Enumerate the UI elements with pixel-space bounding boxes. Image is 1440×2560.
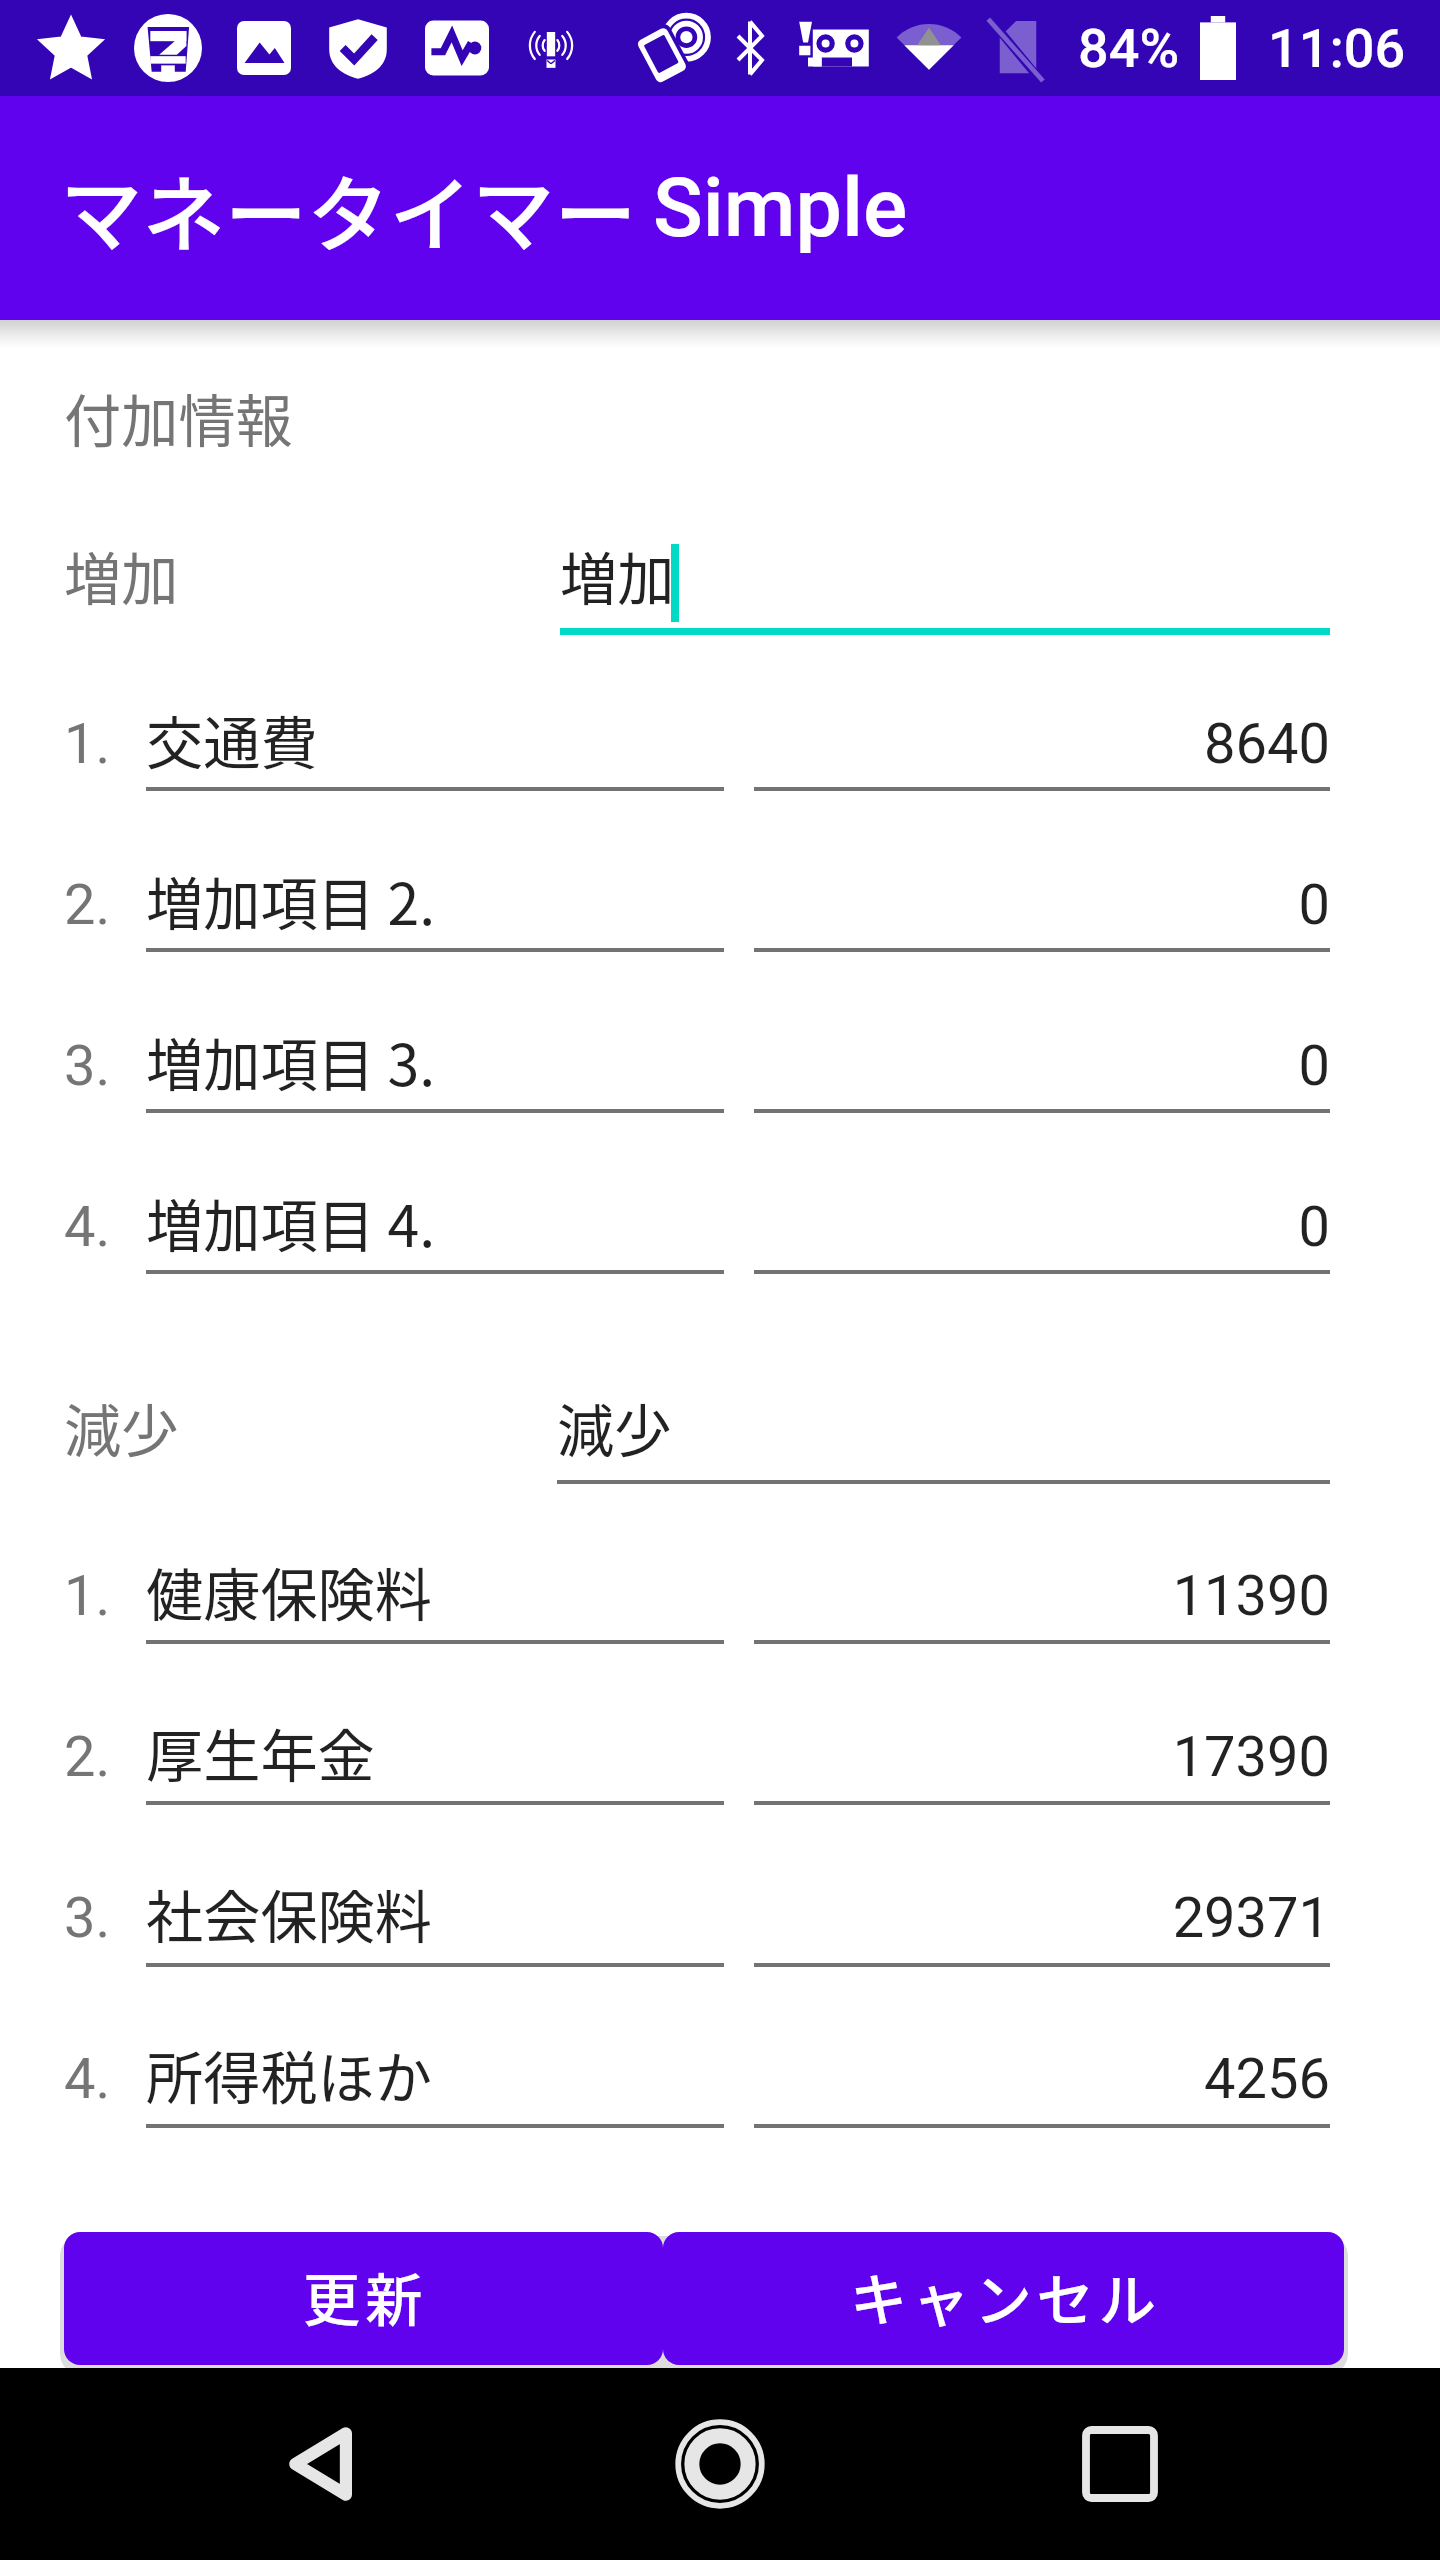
button[interactable]: Back	[224, 2368, 416, 2560]
staticText: 11:06	[1268, 17, 1406, 80]
staticText: 健康保険料	[146, 1550, 432, 1633]
staticText: 8640	[754, 711, 1330, 777]
button[interactable]	[146, 1693, 724, 1809]
staticText: 4.	[64, 2046, 111, 2112]
button[interactable]	[146, 680, 724, 795]
staticText: 2.	[64, 872, 111, 938]
button[interactable]	[754, 1854, 1330, 1971]
staticText: 1.	[64, 711, 111, 777]
button[interactable]	[754, 2015, 1330, 2132]
staticText: 84%	[1078, 17, 1180, 80]
button[interactable]	[146, 1532, 724, 1648]
staticText: 社会保険料	[146, 1872, 432, 1955]
staticText: キャンセル	[850, 2255, 1161, 2338]
staticText: 増加項目 2.	[146, 859, 436, 942]
staticText: 厚生年金	[146, 1711, 375, 1794]
staticText: 3.	[64, 1033, 111, 1099]
button[interactable]	[754, 680, 1330, 795]
button[interactable]: キャンセル	[663, 2232, 1344, 2365]
staticText: 減少	[557, 1386, 672, 1469]
button[interactable]	[146, 841, 724, 956]
staticText: 減少	[64, 1386, 179, 1469]
staticText: 1.	[64, 1563, 111, 1629]
staticText: 0	[754, 872, 1330, 938]
staticText: マネータイマー	[60, 149, 637, 268]
button[interactable]	[557, 1372, 1330, 1492]
button[interactable]: Recent apps	[1024, 2368, 1216, 2560]
button[interactable]	[146, 2015, 724, 2132]
button[interactable]	[560, 520, 1330, 640]
staticText: 増加項目 3.	[146, 1020, 436, 1103]
staticText: Simple	[653, 160, 908, 257]
staticText: 増加	[64, 534, 179, 617]
staticText: 3.	[64, 1885, 111, 1951]
staticText: 増加項目 4.	[146, 1181, 436, 1264]
staticText: 0	[754, 1033, 1330, 1099]
button[interactable]: 更新	[64, 2232, 663, 2365]
staticText: 所得税ほか	[146, 2033, 432, 2116]
button[interactable]	[754, 1163, 1330, 1278]
staticText: 増加	[560, 534, 675, 617]
staticText: 29371	[754, 1885, 1330, 1951]
staticText: 4256	[754, 2046, 1330, 2112]
staticText: 交通費	[146, 698, 318, 781]
button[interactable]: Home	[624, 2368, 816, 2560]
button[interactable]	[146, 1163, 724, 1278]
staticText: 更新	[303, 2255, 428, 2338]
button[interactable]	[754, 1693, 1330, 1809]
staticText: 付加情報	[64, 376, 293, 459]
staticText: 0	[754, 1194, 1330, 1260]
staticText: 17390	[754, 1724, 1330, 1790]
button[interactable]	[754, 841, 1330, 956]
button[interactable]	[146, 1002, 724, 1117]
button[interactable]	[754, 1532, 1330, 1648]
staticText: 11390	[754, 1563, 1330, 1629]
staticText: 4.	[64, 1194, 111, 1260]
button[interactable]	[146, 1854, 724, 1971]
staticText: 2.	[64, 1724, 111, 1790]
button[interactable]	[754, 1002, 1330, 1117]
